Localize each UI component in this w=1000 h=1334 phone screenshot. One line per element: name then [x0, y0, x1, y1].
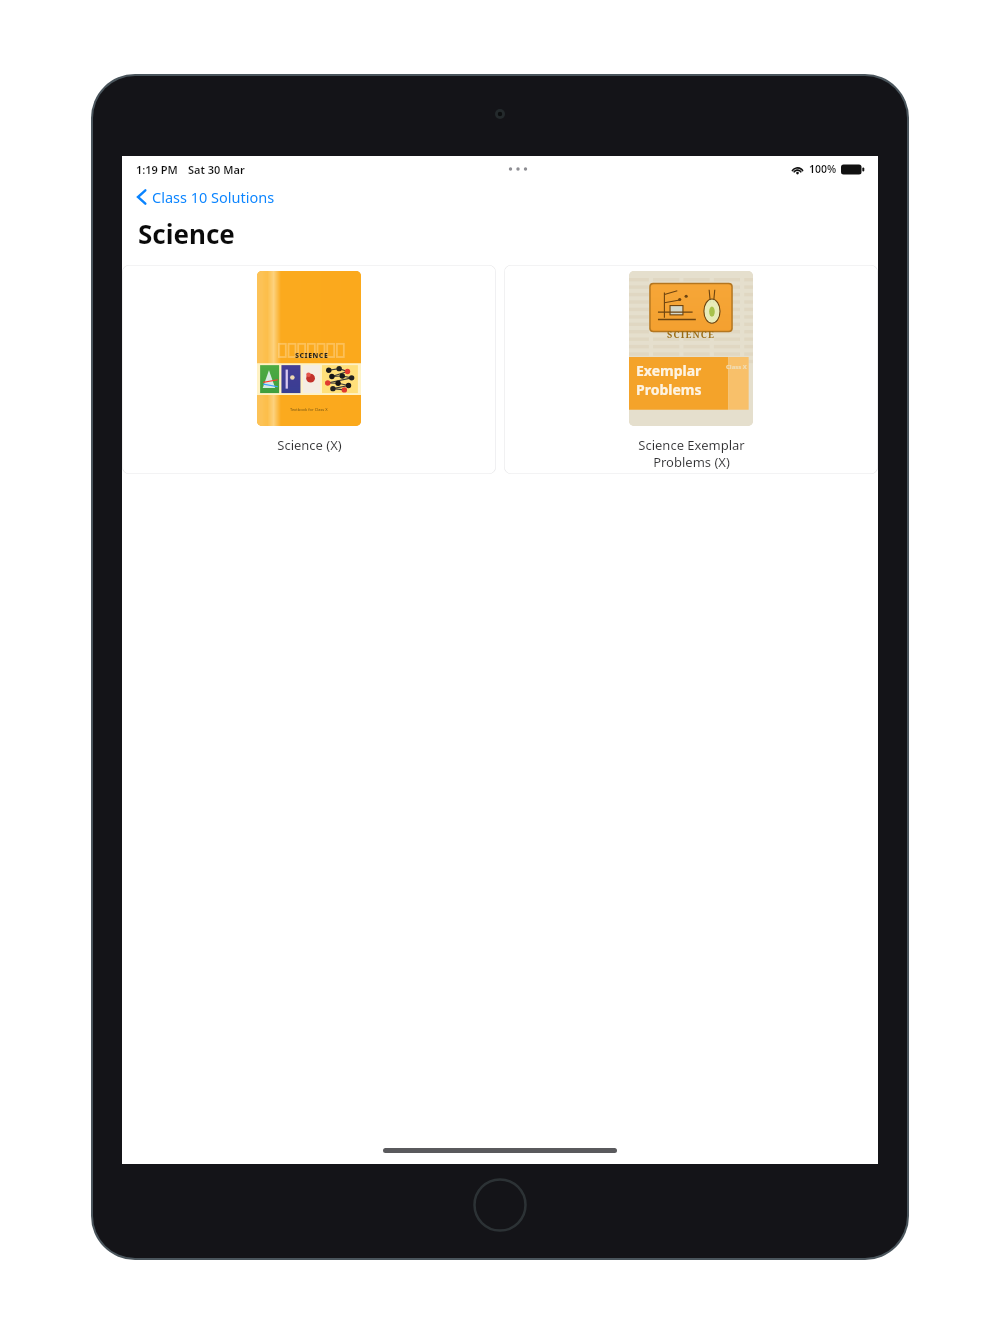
staticText: Textbook for Class X — [290, 407, 328, 412]
staticText: Science (X) — [277, 436, 342, 454]
staticText: Sat 30 Mar — [188, 162, 245, 177]
staticText: Exemplar — [636, 361, 702, 380]
staticText: Class X — [726, 363, 747, 371]
staticText: 100% — [809, 162, 837, 176]
staticText: SCIENCE — [295, 351, 329, 361]
staticText: Science — [138, 216, 235, 251]
button[interactable]: SCIENCE — [122, 265, 496, 474]
staticText: Problems — [636, 380, 702, 399]
staticText: SCIENCE — [667, 328, 716, 340]
button[interactable]: SCIENCE — [504, 265, 878, 474]
staticText: Class 10 Solutions — [152, 187, 275, 207]
button[interactable]: Class 10 Solutions — [134, 182, 277, 212]
staticText: Science Exemplar Problems (X) — [638, 436, 745, 471]
staticText: 1:19 PM — [136, 162, 178, 177]
